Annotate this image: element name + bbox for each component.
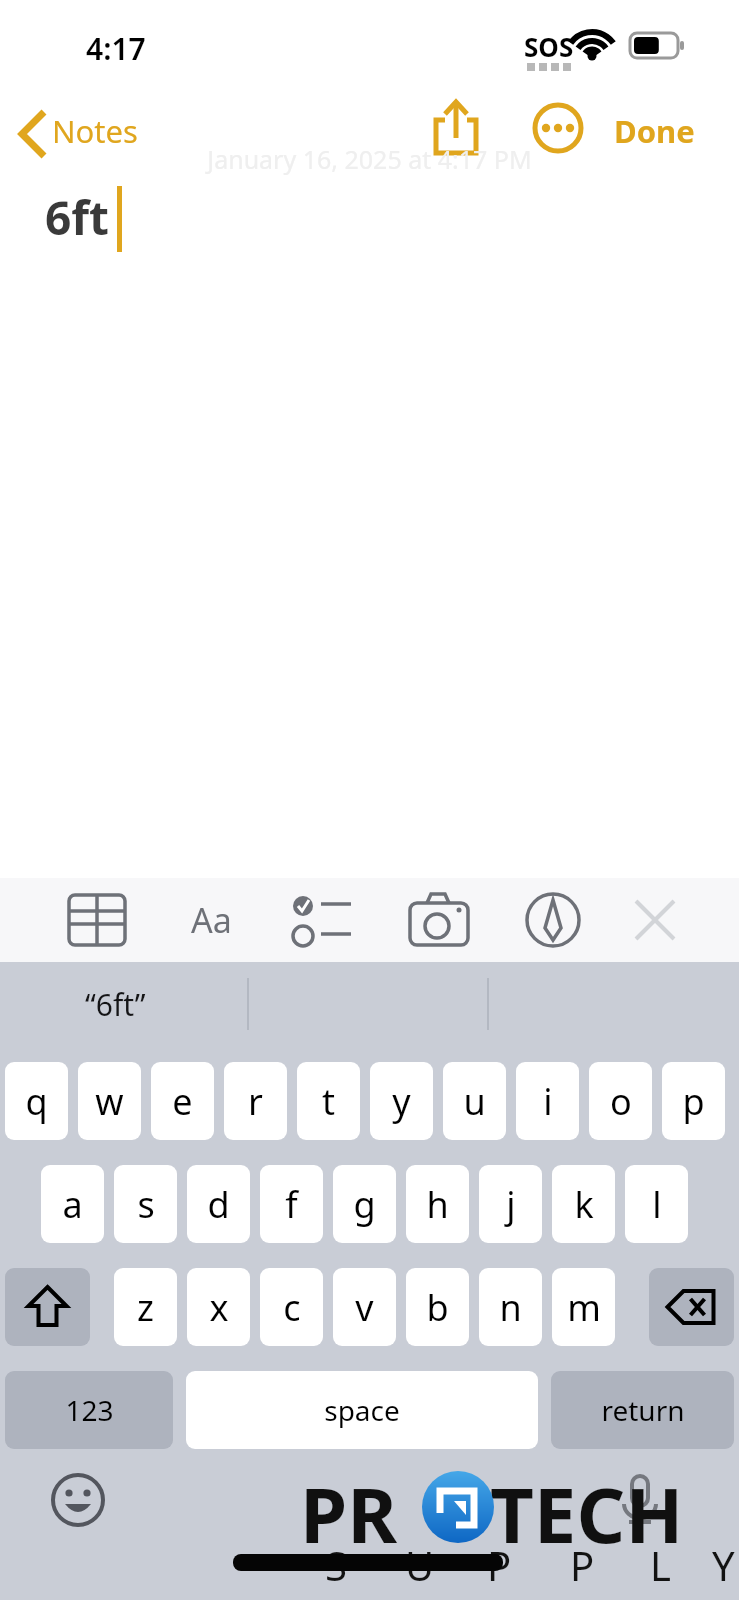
staticText: Notes: [52, 110, 138, 152]
button[interactable]: g: [333, 1165, 396, 1243]
button[interactable]: e: [151, 1062, 214, 1140]
staticText: space: [324, 1391, 400, 1429]
button[interactable]: r: [224, 1062, 287, 1140]
button[interactable]: a: [41, 1165, 104, 1243]
button[interactable]: Done: [608, 100, 718, 158]
button[interactable]: Notes: [6, 100, 151, 158]
button[interactable]: x: [187, 1268, 250, 1346]
staticText: Aa: [191, 897, 232, 943]
staticText: q: [25, 1077, 48, 1126]
button[interactable]: v: [333, 1268, 396, 1346]
button[interactable]: Table: [57, 882, 137, 958]
staticText: y: [392, 1077, 411, 1126]
staticText: x: [209, 1283, 229, 1332]
staticText: P: [487, 1538, 512, 1592]
staticText: a: [62, 1180, 83, 1229]
button[interactable]: l: [625, 1165, 688, 1243]
staticText: e: [172, 1077, 193, 1126]
staticText: m: [567, 1283, 601, 1332]
staticText: k: [574, 1180, 594, 1229]
staticText: return: [601, 1391, 685, 1429]
staticText: L: [650, 1538, 671, 1592]
button[interactable]: Dictation: [610, 1470, 670, 1530]
button[interactable]: Camera: [399, 882, 479, 958]
staticText: c: [283, 1283, 301, 1332]
button[interactable]: c: [260, 1268, 323, 1346]
button[interactable]: w: [78, 1062, 141, 1140]
staticText: p: [682, 1077, 705, 1126]
staticText: b: [426, 1283, 449, 1332]
staticText: S: [325, 1538, 347, 1592]
staticText: n: [499, 1283, 522, 1332]
button[interactable]: u: [443, 1062, 506, 1140]
button[interactable]: s: [114, 1165, 177, 1243]
staticText: “6ft”: [85, 984, 146, 1025]
staticText: January 16, 2025 at 4:17 PM: [207, 142, 532, 176]
staticText: PR: [300, 1462, 398, 1566]
staticText: SOS: [524, 29, 574, 64]
staticText: d: [207, 1180, 230, 1229]
staticText: f: [285, 1180, 298, 1229]
staticText: 123: [65, 1391, 114, 1429]
button[interactable]: More options: [532, 102, 584, 154]
button[interactable]: p: [662, 1062, 725, 1140]
staticText: j: [506, 1180, 516, 1229]
button[interactable]: Format: [171, 882, 251, 958]
staticText: 6ft: [45, 186, 110, 249]
staticText: s: [137, 1180, 155, 1229]
button[interactable]: i: [516, 1062, 579, 1140]
staticText: P: [570, 1538, 595, 1592]
button[interactable]: Share: [424, 98, 488, 160]
button[interactable]: z: [114, 1268, 177, 1346]
button[interactable]: space: [186, 1371, 538, 1449]
staticText: r: [248, 1077, 263, 1126]
button[interactable]: q: [5, 1062, 68, 1140]
button[interactable]: Close: [615, 882, 695, 958]
button[interactable]: f: [260, 1165, 323, 1243]
button[interactable]: Checklist: [285, 882, 365, 958]
staticText: h: [426, 1180, 449, 1229]
button[interactable]: return: [551, 1371, 734, 1449]
button[interactable]: Backspace: [649, 1268, 734, 1346]
button[interactable]: Emoji: [48, 1470, 108, 1530]
staticText: o: [610, 1077, 632, 1126]
staticText: Done: [614, 110, 695, 152]
staticText: g: [353, 1180, 376, 1229]
button[interactable]: 123: [5, 1371, 173, 1449]
staticText: z: [137, 1283, 154, 1332]
staticText: Y: [712, 1538, 735, 1592]
staticText: TECH: [490, 1462, 684, 1566]
button[interactable]: t: [297, 1062, 360, 1140]
button[interactable]: y: [370, 1062, 433, 1140]
staticText: U: [405, 1538, 435, 1592]
button[interactable]: b: [406, 1268, 469, 1346]
button[interactable]: o: [589, 1062, 652, 1140]
button[interactable]: Markup: [513, 882, 593, 958]
staticText: u: [463, 1077, 486, 1126]
button[interactable]: j: [479, 1165, 542, 1243]
button[interactable]: m: [552, 1268, 615, 1346]
staticText: 4:17: [86, 28, 146, 69]
staticText: v: [355, 1283, 374, 1332]
staticText: l: [652, 1180, 662, 1229]
button[interactable]: n: [479, 1268, 542, 1346]
button[interactable]: k: [552, 1165, 615, 1243]
button[interactable]: h: [406, 1165, 469, 1243]
staticText: t: [322, 1077, 335, 1126]
button[interactable]: d: [187, 1165, 250, 1243]
staticText: w: [95, 1077, 124, 1126]
staticText: i: [543, 1077, 553, 1126]
button[interactable]: Shift: [5, 1268, 90, 1346]
